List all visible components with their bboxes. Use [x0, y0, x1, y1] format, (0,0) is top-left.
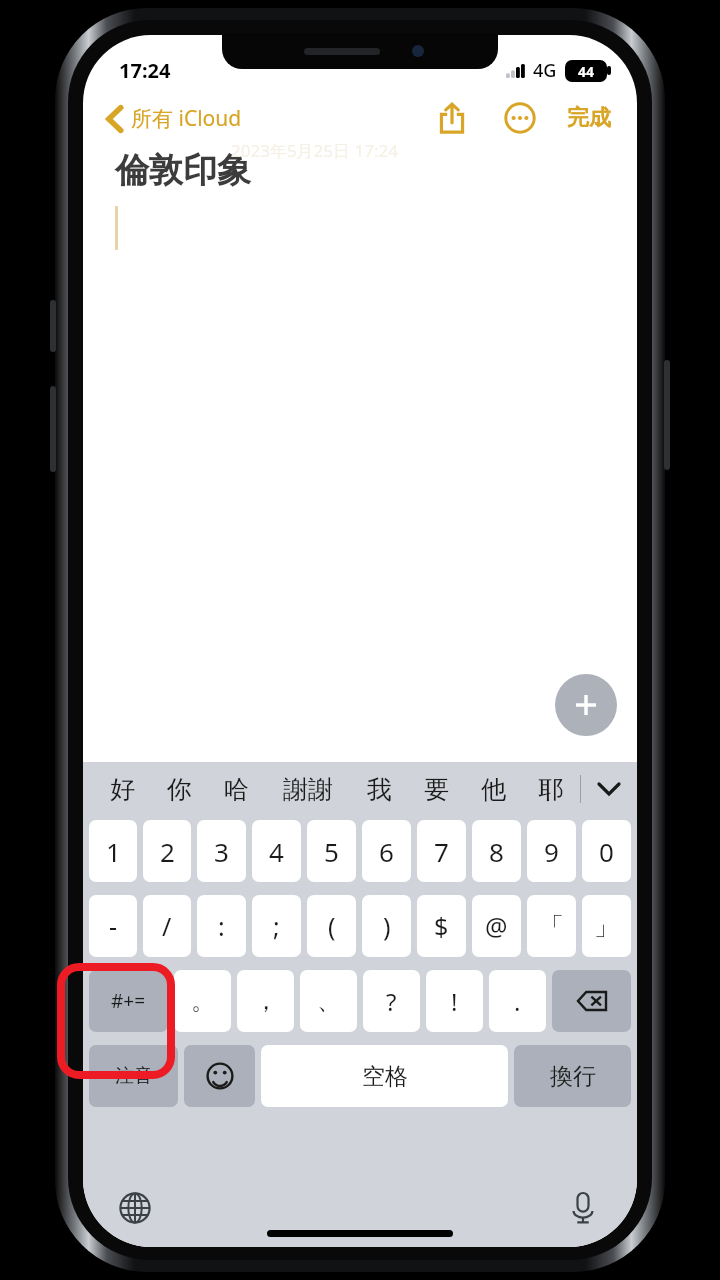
button[interactable]: 空格	[261, 1045, 508, 1107]
staticText: 9	[544, 834, 559, 869]
button[interactable]: .	[489, 970, 546, 1032]
staticText: 他	[481, 774, 506, 805]
staticText: $	[434, 909, 449, 943]
staticText: 注音	[115, 1064, 153, 1088]
button[interactable]: 所有 iCloud	[103, 98, 246, 139]
staticText: 你	[167, 774, 192, 805]
staticText: 7	[434, 834, 449, 869]
button[interactable]: 8	[472, 820, 521, 882]
staticText: 4	[269, 834, 284, 869]
button[interactable]: 、	[300, 970, 357, 1032]
button[interactable]: 要	[408, 762, 465, 816]
staticText: 6	[379, 834, 394, 869]
button[interactable]: 1	[89, 820, 137, 882]
staticText: 謝謝	[283, 774, 333, 805]
button[interactable]: $	[417, 895, 466, 957]
staticText: )	[383, 909, 391, 943]
staticText: ，	[254, 986, 278, 1016]
button[interactable]: ，	[237, 970, 294, 1032]
staticText: 1	[106, 834, 121, 869]
button[interactable]: 7	[417, 820, 466, 882]
staticText: 。	[191, 986, 215, 1016]
button[interactable]: (	[307, 895, 356, 957]
button[interactable]: 6	[362, 820, 411, 882]
button[interactable]: #+=	[89, 970, 168, 1032]
staticText: 所有 iCloud	[131, 104, 242, 133]
staticText: (	[328, 909, 336, 943]
button[interactable]: @	[472, 895, 521, 957]
button[interactable]: ;	[252, 895, 301, 957]
button[interactable]: Share	[429, 95, 475, 141]
button[interactable]: 我	[351, 762, 408, 816]
button[interactable]: 0	[582, 820, 631, 882]
button[interactable]: Add	[555, 674, 617, 736]
button[interactable]: 換行	[514, 1045, 631, 1107]
staticText: 4G	[533, 58, 557, 83]
staticText: 5	[324, 834, 339, 869]
button[interactable]: 。	[174, 970, 231, 1032]
button[interactable]: 「	[527, 895, 576, 957]
button[interactable]: ?	[363, 970, 420, 1032]
staticText: 2023年5月25日 17:24	[231, 139, 398, 162]
staticText: :	[218, 909, 225, 943]
button[interactable]: 好	[93, 762, 151, 816]
staticText: .	[514, 985, 521, 1018]
staticText: 、	[317, 986, 341, 1016]
button[interactable]: 完成	[561, 98, 617, 138]
staticText: 空格	[362, 1062, 408, 1091]
staticText: 要	[424, 774, 449, 805]
staticText: 好	[110, 774, 135, 805]
staticText: -	[109, 909, 118, 943]
staticText: 倫敦印象	[115, 149, 251, 192]
staticText: 0	[599, 834, 614, 869]
staticText: 」	[594, 911, 619, 942]
staticText: 44	[578, 62, 595, 81]
staticText: 我	[367, 774, 392, 805]
button[interactable]: 注音	[89, 1045, 178, 1107]
button[interactable]: Delete	[552, 970, 631, 1032]
staticText: 「	[539, 911, 564, 942]
staticText: ;	[273, 909, 280, 943]
staticText: 換行	[550, 1062, 596, 1091]
button[interactable]: 2	[143, 820, 191, 882]
button[interactable]: 9	[527, 820, 576, 882]
button[interactable]: -	[89, 895, 137, 957]
button[interactable]: 3	[197, 820, 246, 882]
staticText: 8	[489, 834, 504, 869]
staticText: 3	[214, 834, 229, 869]
button[interactable]: /	[143, 895, 191, 957]
button[interactable]: 哈	[208, 762, 265, 816]
staticText: 哈	[224, 774, 249, 805]
button[interactable]: !	[426, 970, 483, 1032]
button[interactable]: Hide keyboard	[581, 762, 637, 816]
staticText: ?	[386, 985, 397, 1018]
button[interactable]: 」	[582, 895, 631, 957]
button[interactable]: 他	[465, 762, 522, 816]
staticText: 17:24	[119, 57, 171, 84]
staticText: #+=	[111, 988, 146, 1014]
staticText: /	[162, 909, 172, 943]
staticText: !	[451, 985, 458, 1018]
button[interactable]: Change keyboard	[111, 1184, 159, 1232]
button[interactable]: 耶	[522, 762, 579, 816]
button[interactable]: Emoji	[184, 1045, 255, 1107]
staticText: 2	[160, 834, 175, 869]
staticText: @	[485, 909, 508, 943]
button[interactable]: 5	[307, 820, 356, 882]
button[interactable]: More options	[497, 95, 543, 141]
staticText: 耶	[538, 774, 563, 805]
button[interactable]: 4	[252, 820, 301, 882]
button[interactable]: Dictate	[559, 1184, 607, 1232]
button[interactable]: :	[197, 895, 246, 957]
button[interactable]: 謝謝	[265, 762, 351, 816]
staticText: 完成	[567, 104, 611, 132]
button[interactable]: 你	[151, 762, 208, 816]
button[interactable]: )	[362, 895, 411, 957]
